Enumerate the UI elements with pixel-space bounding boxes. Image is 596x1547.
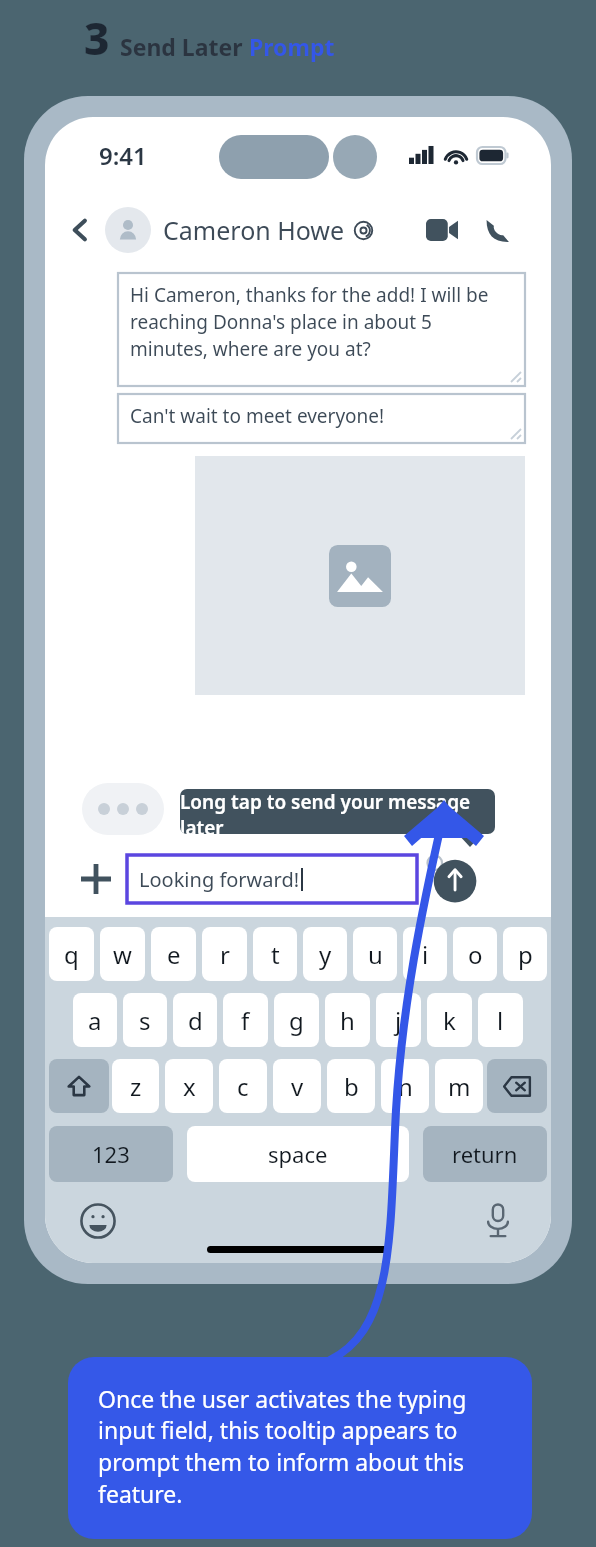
staticText: Cameron Howe bbox=[163, 213, 345, 247]
staticText: Once the user activates the typing input… bbox=[98, 1383, 508, 1510]
button[interactable]: r bbox=[202, 927, 247, 981]
button[interactable]: w bbox=[100, 927, 145, 981]
button[interactable]: k bbox=[427, 993, 472, 1047]
staticText: o bbox=[468, 938, 483, 971]
staticText: s bbox=[139, 1004, 151, 1037]
button[interactable]: h bbox=[325, 993, 370, 1047]
staticText: u bbox=[368, 938, 383, 971]
button[interactable]: c bbox=[219, 1059, 267, 1113]
staticText: x bbox=[183, 1070, 196, 1103]
staticText: n bbox=[398, 1070, 413, 1103]
button[interactable]: s bbox=[123, 993, 167, 1047]
staticText: l bbox=[497, 1004, 504, 1037]
staticText: Can't wait to meet everyone! bbox=[130, 403, 385, 429]
staticText: j bbox=[395, 1004, 402, 1037]
staticText: 3 bbox=[84, 8, 110, 68]
button[interactable]: b bbox=[327, 1059, 375, 1113]
staticText: 123 bbox=[92, 1139, 130, 1169]
staticText: Looking forward! bbox=[139, 866, 300, 893]
staticText: b bbox=[344, 1070, 359, 1103]
staticText: a bbox=[88, 1004, 102, 1037]
button[interactable] bbox=[195, 456, 525, 695]
staticText: i bbox=[422, 938, 429, 971]
staticText: w bbox=[113, 938, 132, 971]
staticText: 9:41 bbox=[99, 139, 147, 172]
staticText: v bbox=[291, 1070, 304, 1103]
button[interactable]: Emoji bbox=[75, 1198, 121, 1244]
button[interactable]: Long tap to send your message later bbox=[180, 789, 495, 834]
button[interactable]: d bbox=[173, 993, 217, 1047]
button[interactable]: Call bbox=[475, 207, 521, 253]
button[interactable] bbox=[105, 207, 151, 253]
staticText: y bbox=[319, 938, 332, 971]
button[interactable]: Send bbox=[428, 853, 480, 905]
staticText: g bbox=[289, 1004, 304, 1037]
button[interactable]: Voice input bbox=[475, 1198, 521, 1244]
button[interactable]: space bbox=[187, 1126, 409, 1182]
staticText: t bbox=[271, 938, 280, 971]
button[interactable]: return bbox=[423, 1126, 547, 1182]
button[interactable]: Looking forward! bbox=[127, 855, 417, 903]
staticText: k bbox=[443, 1004, 456, 1037]
button[interactable]: l bbox=[478, 993, 523, 1047]
staticText: Send Later bbox=[120, 31, 249, 62]
button[interactable]: e bbox=[151, 927, 196, 981]
staticText: return bbox=[452, 1139, 518, 1169]
button[interactable]: Hi Cameron, thanks for the add! I will b… bbox=[118, 273, 525, 386]
staticText: space bbox=[268, 1139, 328, 1169]
staticText: r bbox=[220, 938, 230, 971]
staticText: q bbox=[64, 938, 79, 971]
staticText: f bbox=[241, 1004, 250, 1037]
staticText: Long tap to send your message later bbox=[180, 789, 495, 834]
button[interactable]: u bbox=[353, 927, 397, 981]
button[interactable]: q bbox=[49, 927, 94, 981]
staticText: e bbox=[167, 938, 181, 971]
button[interactable]: Back bbox=[59, 209, 101, 251]
staticText: Prompt bbox=[249, 31, 335, 62]
button[interactable]: Once the user activates the typing input… bbox=[68, 1357, 532, 1539]
button[interactable]: Video call bbox=[419, 207, 465, 253]
button[interactable]: y bbox=[303, 927, 347, 981]
button[interactable]: Backspace bbox=[487, 1059, 547, 1113]
staticText: m bbox=[448, 1070, 471, 1103]
button[interactable]: t bbox=[253, 927, 297, 981]
button[interactable]: z bbox=[112, 1059, 159, 1113]
button[interactable]: m bbox=[435, 1059, 483, 1113]
staticText: p bbox=[518, 938, 533, 971]
button[interactable]: 123 bbox=[49, 1126, 173, 1182]
button[interactable]: o bbox=[453, 927, 497, 981]
button[interactable]: a bbox=[73, 993, 117, 1047]
button[interactable]: x bbox=[165, 1059, 213, 1113]
button[interactable]: v bbox=[273, 1059, 321, 1113]
button[interactable]: n bbox=[381, 1059, 429, 1113]
button[interactable]: j bbox=[376, 993, 421, 1047]
button[interactable]: i bbox=[403, 927, 447, 981]
staticText: d bbox=[188, 1004, 203, 1037]
button[interactable]: Can't wait to meet everyone! bbox=[118, 394, 525, 443]
button[interactable]: Shift bbox=[49, 1059, 109, 1113]
staticText: z bbox=[130, 1070, 142, 1103]
staticText: c bbox=[237, 1070, 249, 1103]
staticText: h bbox=[340, 1004, 355, 1037]
button[interactable]: f bbox=[223, 993, 268, 1047]
button[interactable]: g bbox=[274, 993, 319, 1047]
button[interactable]: Add attachment bbox=[73, 856, 119, 902]
staticText: Hi Cameron, thanks for the add! I will b… bbox=[130, 282, 509, 362]
button[interactable]: p bbox=[503, 927, 547, 981]
